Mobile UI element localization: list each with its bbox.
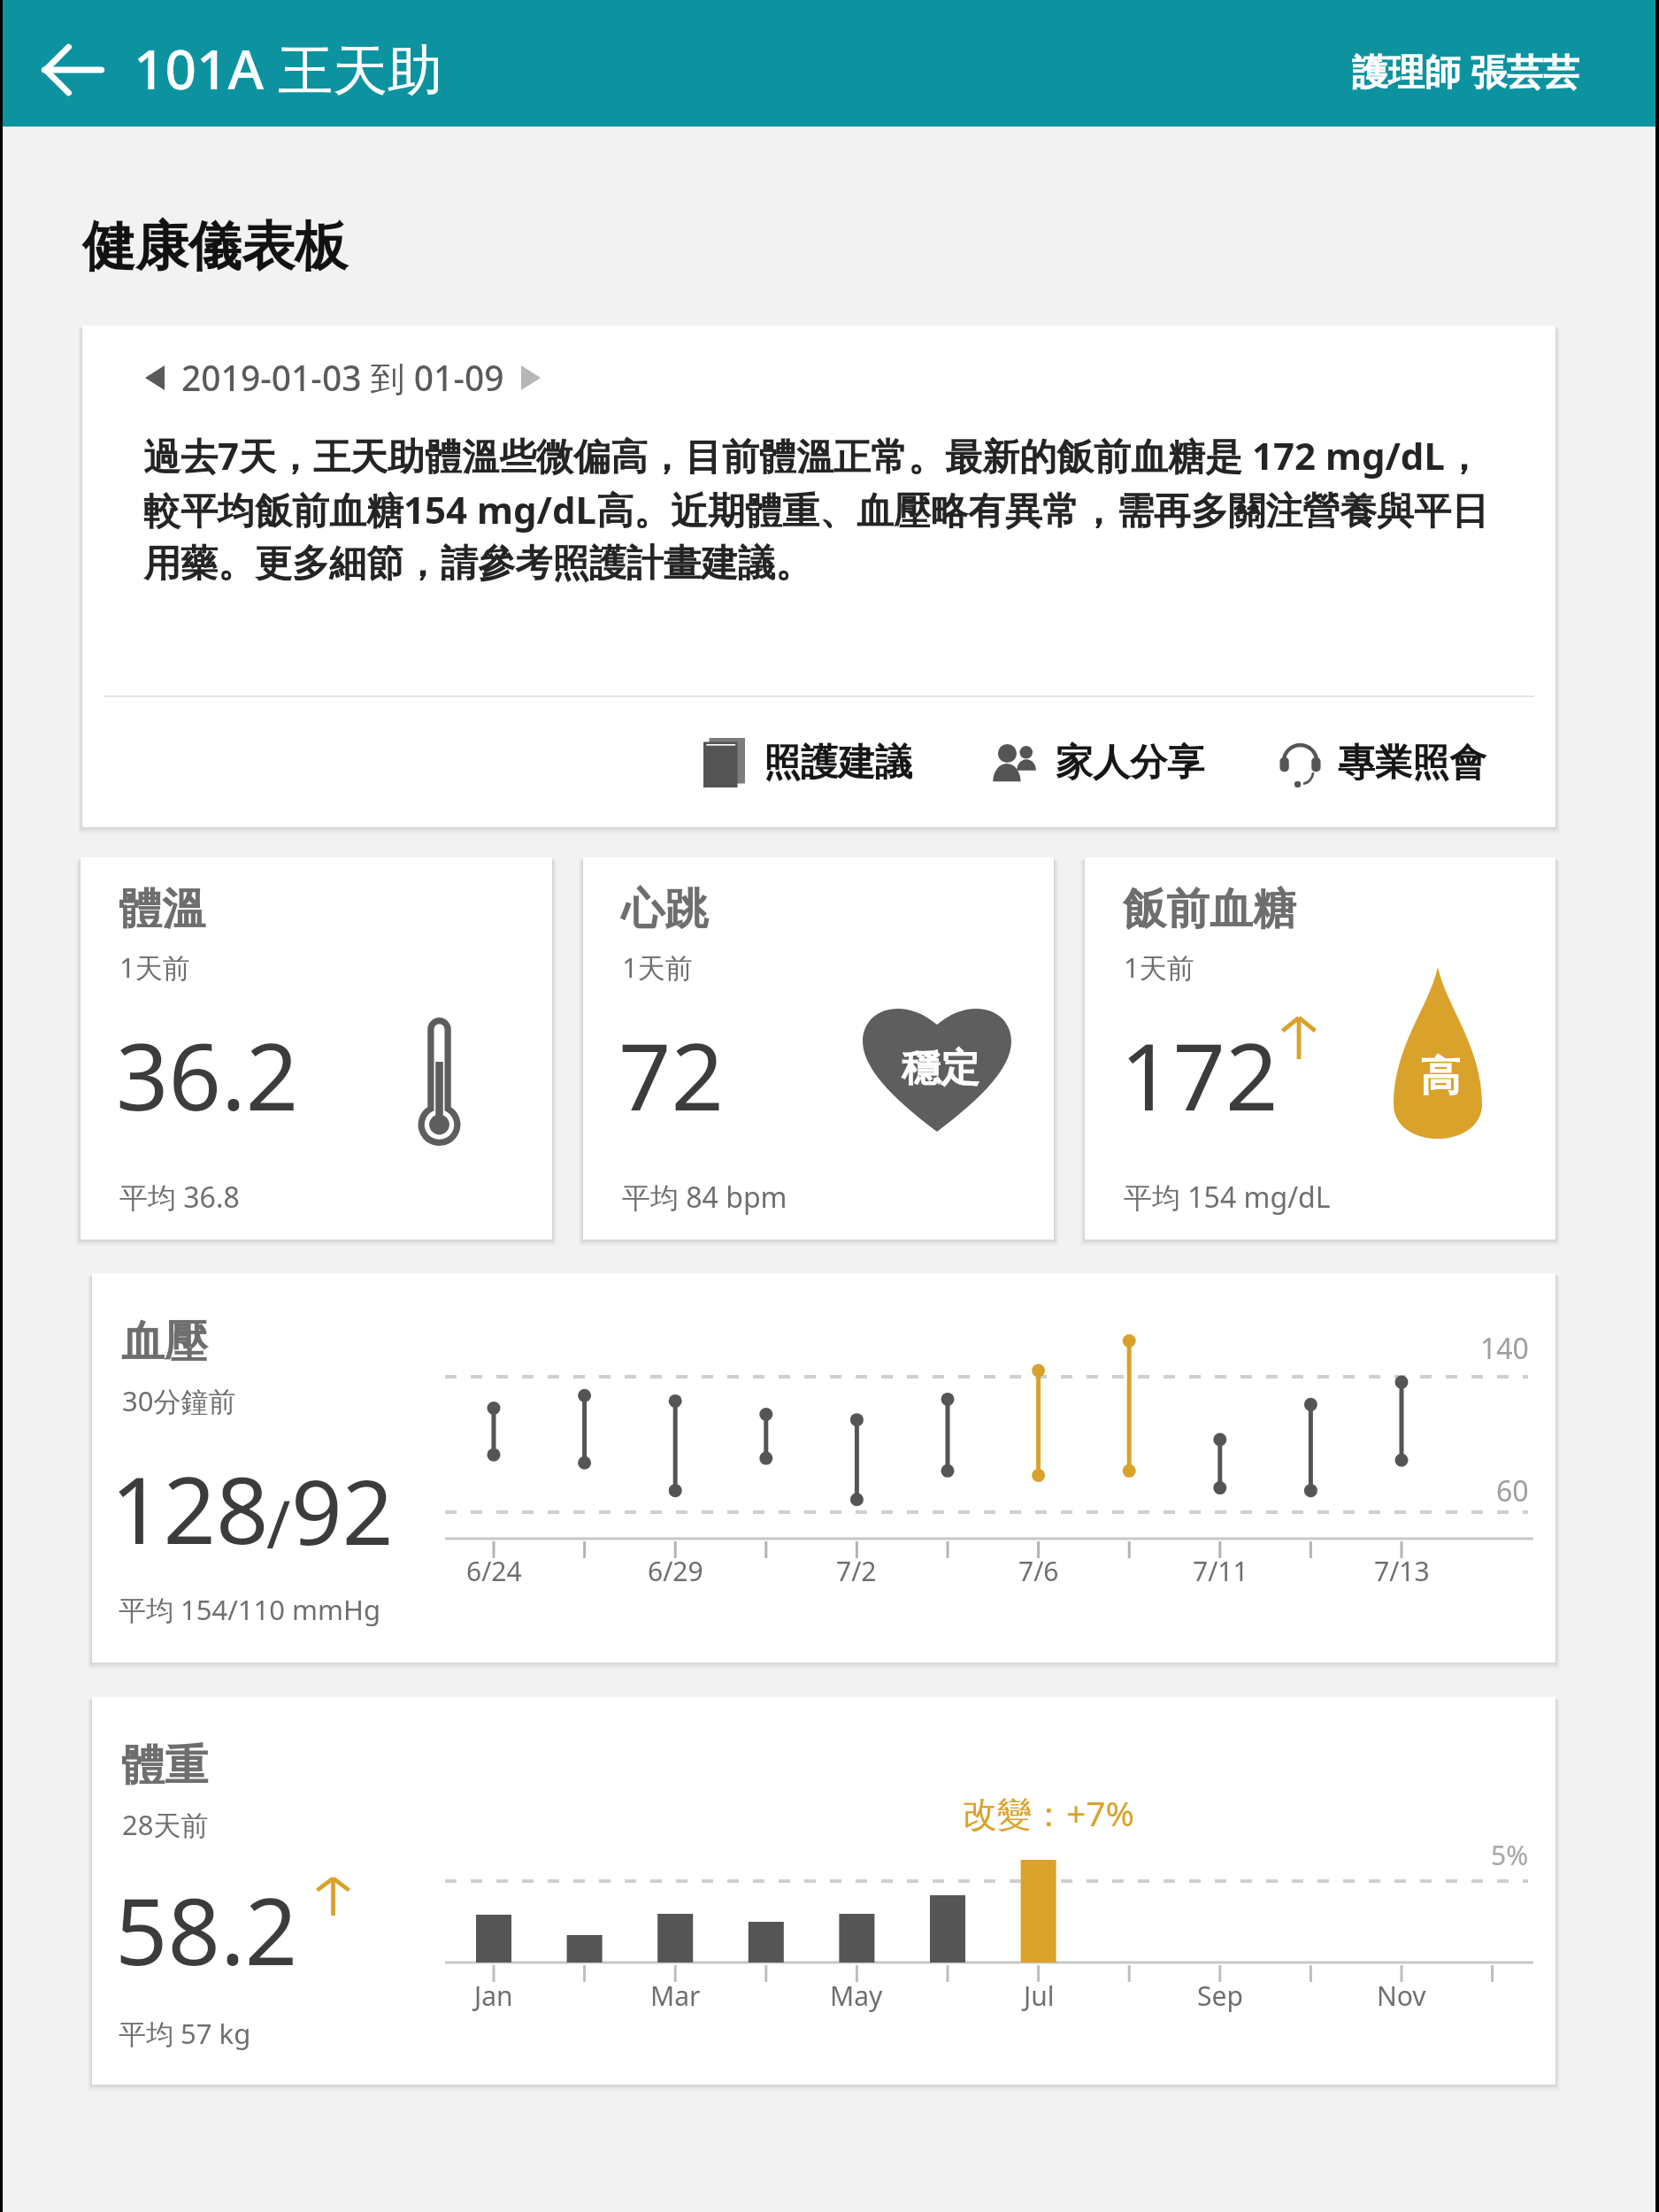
staticText: 6/29	[648, 1553, 703, 1589]
staticText: 平均 36.8	[119, 1178, 240, 1217]
staticText: 血壓	[121, 1315, 208, 1370]
staticText: 過去7天，王天助體溫些微偏高，目前體溫正常。最新的飯前血糖是 172 mg/dL…	[143, 430, 1510, 588]
staticText: 平均 84 bpm	[622, 1178, 787, 1217]
staticText: 飯前血糖	[1123, 882, 1296, 937]
staticText: 5%	[1491, 1837, 1529, 1873]
staticText: 7/6	[1018, 1553, 1059, 1589]
staticText: 7/11	[1193, 1553, 1248, 1589]
button[interactable]: 家人分享	[990, 729, 1204, 797]
button[interactable]: Previous period	[134, 357, 176, 399]
staticText: 72	[618, 1012, 724, 1138]
button[interactable]: 護理師 張芸芸	[1352, 46, 1655, 96]
staticText: 平均 57 kg	[119, 2015, 251, 2052]
staticText: Mar	[650, 1978, 701, 2014]
staticText: 36.2	[116, 1012, 299, 1138]
staticText: 體溫	[119, 882, 205, 937]
button[interactable]: Previous period	[82, 326, 1555, 827]
staticText: 改變：+7%	[963, 1789, 1135, 1836]
button[interactable]: 體重	[92, 1697, 1555, 2085]
staticText: 7/2	[836, 1553, 877, 1589]
button[interactable]: 血壓	[92, 1273, 1555, 1663]
staticText: 1天前	[119, 949, 190, 986]
staticText: 專業照會	[1338, 740, 1486, 787]
staticText: 101A 王天助	[134, 31, 443, 106]
staticText: 健康儀表板	[82, 213, 348, 280]
staticText: 1天前	[622, 949, 693, 986]
button[interactable]: 飯前血糖	[1085, 857, 1555, 1240]
staticText: Jan	[474, 1978, 513, 2014]
staticText: 92	[291, 1449, 394, 1571]
staticText: 心跳	[621, 882, 708, 937]
staticText: 體重	[121, 1739, 208, 1793]
staticText: 高	[1420, 1051, 1461, 1102]
staticText: 7/13	[1374, 1553, 1430, 1589]
staticText: 平均 154 mg/dL	[1124, 1178, 1331, 1217]
staticText: 140	[1480, 1329, 1529, 1368]
button[interactable]: 照護建議	[703, 727, 912, 798]
staticText: 60	[1496, 1471, 1529, 1510]
staticText: 128	[111, 1446, 269, 1571]
staticText: 穩定	[902, 1044, 979, 1093]
staticText: Nov	[1377, 1978, 1426, 2014]
button[interactable]: Next period	[510, 357, 552, 399]
staticText: 照護建議	[764, 740, 912, 787]
staticText: 58.2	[115, 1867, 298, 1993]
button[interactable]: 體溫	[81, 857, 552, 1240]
staticText: 172	[1120, 1012, 1279, 1138]
staticText: 1天前	[1124, 949, 1194, 986]
button[interactable]: 專業照會	[1279, 729, 1486, 797]
staticText: 28天前	[122, 1806, 209, 1843]
staticText: 平均 154/110 mmHg	[119, 1591, 381, 1628]
button[interactable]: Back	[29, 27, 114, 112]
staticText: Jul	[1024, 1978, 1055, 2014]
staticText: 30分鐘前	[122, 1382, 236, 1419]
staticText: 6/24	[466, 1553, 522, 1589]
staticText: May	[830, 1978, 883, 2014]
staticText: 家人分享	[1056, 740, 1204, 787]
staticText: Sep	[1197, 1978, 1243, 2014]
staticText: 2019-01-03 到 01-09	[181, 354, 504, 401]
staticText: /	[266, 1479, 291, 1568]
button[interactable]: 心跳	[583, 857, 1054, 1240]
